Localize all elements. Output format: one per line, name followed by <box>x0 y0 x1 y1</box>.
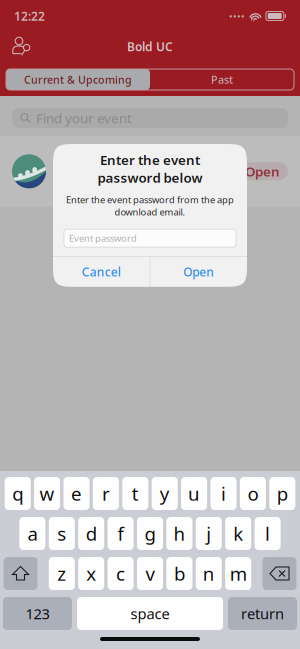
staticText: password below <box>97 169 202 186</box>
button[interactable]: Open <box>150 257 247 287</box>
button[interactable]: 123 <box>3 597 72 630</box>
staticText: d <box>86 521 97 546</box>
button[interactable]: k <box>225 517 251 550</box>
staticText: s <box>57 521 66 546</box>
staticText: w <box>40 481 55 506</box>
staticText: Past <box>211 72 233 87</box>
button[interactable]: n <box>196 557 222 590</box>
button[interactable]: g <box>137 517 163 550</box>
button[interactable]: e <box>63 477 89 510</box>
button[interactable]: t <box>122 477 148 510</box>
staticText: •••• <box>229 10 245 22</box>
staticText: q <box>12 481 23 506</box>
button[interactable]: Profile <box>12 36 33 57</box>
staticText: Jul 30 – Aug 1 <box>56 183 125 198</box>
button[interactable]: a <box>19 517 45 550</box>
staticText: z <box>57 561 66 586</box>
button[interactable]: l <box>255 517 281 550</box>
staticText: h <box>173 521 185 546</box>
button[interactable]: j <box>196 517 222 550</box>
button[interactable]: f <box>108 517 134 550</box>
staticText: 123 <box>25 604 49 623</box>
staticText: space <box>130 604 169 623</box>
staticText: y <box>160 481 170 506</box>
staticText: Cancel <box>82 264 121 280</box>
staticText: b <box>174 561 185 586</box>
button[interactable]: r <box>93 477 119 510</box>
button[interactable]: o <box>240 477 266 510</box>
staticText: Find your event <box>36 109 132 127</box>
staticText: 12:22 <box>14 8 45 24</box>
staticText: j <box>206 521 211 546</box>
staticText: m <box>230 561 247 586</box>
staticText: Enter the event <box>100 151 200 169</box>
staticText: Enter the event password from the app <box>66 193 234 206</box>
staticText: Current & Upcoming <box>24 72 132 87</box>
staticText: 2019 Bold UC Conference <box>56 145 141 180</box>
button[interactable]: s <box>49 517 75 550</box>
staticText: v <box>145 561 154 586</box>
staticText: r <box>102 481 110 506</box>
staticText: a <box>27 521 37 546</box>
button[interactable]: Shift <box>3 557 37 590</box>
staticText: u <box>188 481 200 506</box>
staticText: p <box>277 481 288 506</box>
staticText: o <box>247 481 258 506</box>
button[interactable]: x <box>78 557 104 590</box>
staticText: Bold UC <box>127 38 173 54</box>
button[interactable]: y <box>152 477 178 510</box>
button[interactable]: v <box>137 557 163 590</box>
staticText: l <box>265 521 270 546</box>
staticText: t <box>132 481 139 506</box>
staticText: Open <box>183 264 214 280</box>
staticText: i <box>221 481 226 506</box>
staticText: n <box>203 561 215 586</box>
button[interactable]: q <box>5 477 31 510</box>
button[interactable]: Current & Upcoming <box>6 69 150 90</box>
button[interactable]: Delete <box>262 557 296 590</box>
button[interactable]: m <box>225 557 251 590</box>
button[interactable]: Cancel <box>53 257 150 287</box>
staticText: f <box>118 521 124 546</box>
staticText: Open <box>245 162 280 180</box>
button[interactable]: h <box>166 517 192 550</box>
button[interactable]: z <box>49 557 75 590</box>
staticText: Event password <box>69 232 137 244</box>
staticText: g <box>144 521 155 546</box>
staticText: x <box>86 561 96 586</box>
button[interactable]: space <box>77 597 223 630</box>
button[interactable]: p <box>269 477 295 510</box>
button[interactable]: w <box>34 477 60 510</box>
staticText: return <box>241 604 284 623</box>
button[interactable]: b <box>166 557 192 590</box>
button[interactable]: c <box>108 557 134 590</box>
staticText: e <box>71 481 82 506</box>
button[interactable]: return <box>228 597 297 630</box>
button[interactable]: u <box>181 477 207 510</box>
button[interactable]: d <box>78 517 104 550</box>
button[interactable]: i <box>210 477 236 510</box>
staticText: download email. <box>114 206 185 218</box>
staticText: c <box>116 561 125 586</box>
staticText: k <box>233 521 243 546</box>
button[interactable]: Past <box>150 69 294 90</box>
